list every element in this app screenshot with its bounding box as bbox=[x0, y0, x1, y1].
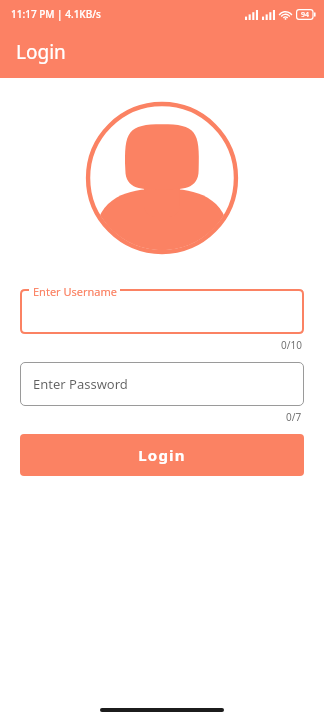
button[interactable]: Login bbox=[20, 434, 304, 476]
staticText: Enter Username bbox=[33, 284, 118, 299]
button[interactable]: Enter Username bbox=[20, 282, 304, 334]
staticText: 0/7 bbox=[286, 410, 302, 424]
button[interactable]: Enter Password bbox=[20, 362, 304, 406]
staticText: Login bbox=[138, 445, 186, 465]
staticText: 0/10 bbox=[281, 338, 302, 352]
staticText: 11:17 PM | 4.1KB/s bbox=[11, 7, 101, 21]
staticText: 94 bbox=[301, 10, 310, 20]
staticText: Enter Password bbox=[33, 375, 128, 393]
staticText: Login bbox=[16, 39, 66, 65]
